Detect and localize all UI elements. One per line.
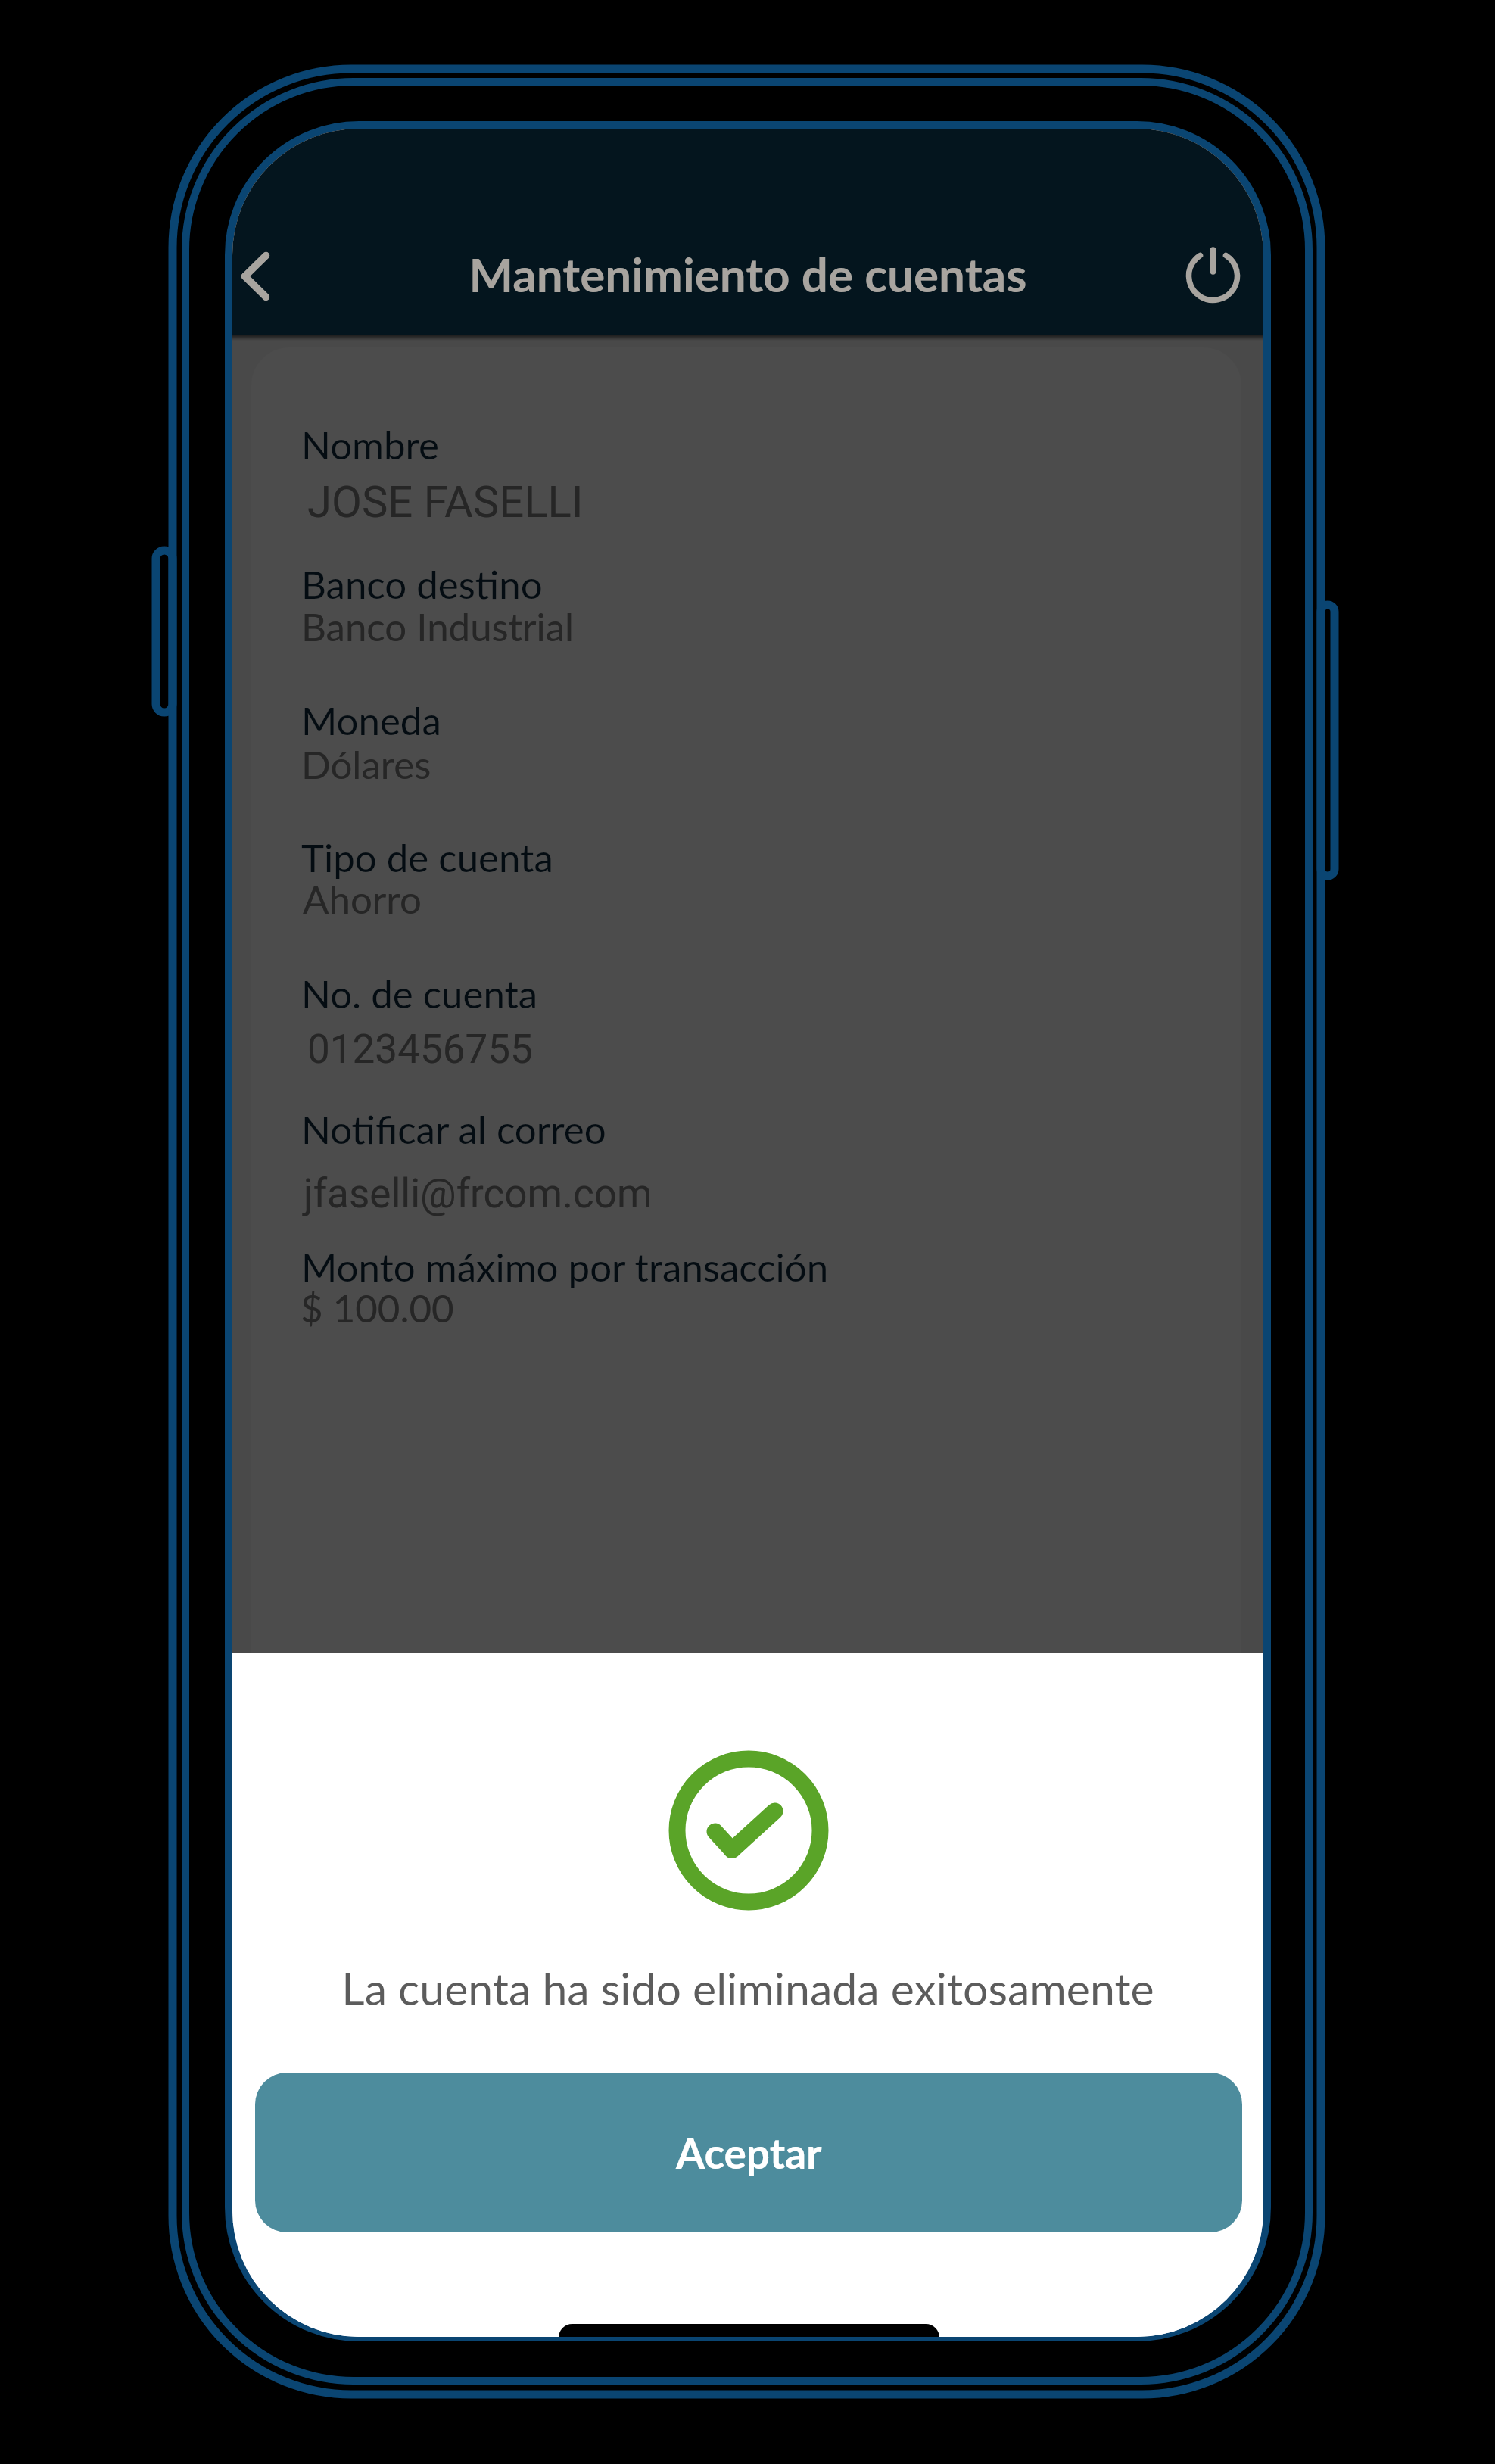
staticText: Tipo de cuenta xyxy=(301,834,553,880)
staticText: Aceptar xyxy=(676,2128,822,2178)
staticText: Mantenimiento de cuentas xyxy=(232,246,1263,302)
staticText: La cuenta ha sido eliminada exitosamente xyxy=(232,1961,1263,2015)
staticText: 0123456755 xyxy=(307,1026,533,1073)
staticText: jfaselli@frcom.com xyxy=(304,1170,653,1217)
other: Success xyxy=(665,1747,832,1914)
staticText: JOSE FASELLI xyxy=(307,476,584,528)
staticText: Banco destino xyxy=(301,561,543,607)
staticText: Nombre xyxy=(301,422,440,468)
button[interactable]: Aceptar xyxy=(255,2073,1242,2232)
staticText: Monto máximo por transacción xyxy=(301,1244,829,1290)
staticText: $ 100.00 xyxy=(301,1285,454,1331)
staticText: Ahorro xyxy=(303,876,422,922)
button[interactable]: Log out xyxy=(1175,235,1258,327)
staticText: Notificar al correo xyxy=(301,1106,606,1152)
staticText: Banco Industrial xyxy=(301,603,575,649)
button[interactable]: Back xyxy=(232,235,316,327)
staticText: Dólares xyxy=(301,741,431,787)
staticText: No. de cuenta xyxy=(301,970,538,1017)
staticText: Moneda xyxy=(301,697,441,743)
